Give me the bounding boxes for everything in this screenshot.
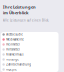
staticText: Medikamente [6,38,24,41]
button[interactable]: Krankenhaus [1,52,58,57]
button[interactable]: Medikamente [1,37,58,42]
staticText: Zahnbehandlung [6,63,31,66]
button[interactable]: Zahnbehandlung [1,62,58,67]
button[interactable]: Rezepte [1,67,58,72]
button[interactable]: Vorsorge [1,57,58,62]
staticText: Krankenhaus [6,53,23,56]
staticText: Hilfsmittel [6,48,20,51]
button[interactable]: Arztbesuche [1,32,58,37]
staticText: Alle Leistungen auf einen Blick. [3,19,49,22]
staticText: Vorsorge [6,58,19,61]
button[interactable]: Heilmittel [1,42,58,47]
staticText: Ihre Leistungen [3,4,36,9]
staticText: Rezepte [6,68,17,71]
button[interactable]: Hilfsmittel [1,47,58,52]
staticText: Arztbesuche [6,33,23,36]
staticText: Heilmittel [6,43,20,46]
staticText: im Überblick [3,10,28,15]
